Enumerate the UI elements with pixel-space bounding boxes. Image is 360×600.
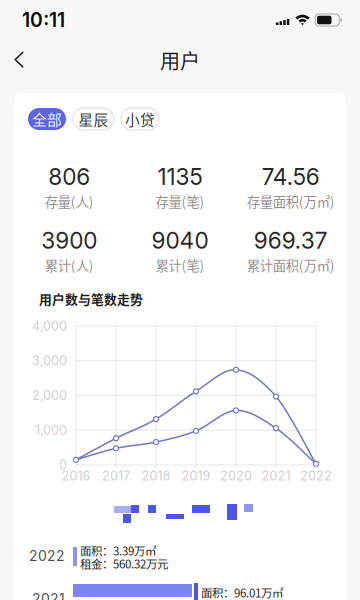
button[interactable]: Back xyxy=(0,40,39,80)
staticText: 全部 xyxy=(32,108,62,130)
staticText: 2022 xyxy=(300,468,332,484)
staticText: 2017 xyxy=(102,468,130,484)
staticText: 9040 xyxy=(151,227,208,254)
staticText: 2022 xyxy=(29,547,65,564)
staticText: 星辰 xyxy=(78,108,108,130)
staticText: 4,000 xyxy=(32,318,67,334)
staticText: 2020 xyxy=(220,468,252,484)
staticText: 2016 xyxy=(61,468,90,484)
staticText: 租金：1508.21万元 xyxy=(201,597,295,600)
button[interactable]: 星辰 xyxy=(73,108,114,130)
staticText: 2,000 xyxy=(32,388,67,403)
staticText: 3900 xyxy=(41,227,97,254)
staticText: 806 xyxy=(48,163,90,190)
staticText: 存量面积(万㎡) xyxy=(247,191,335,211)
staticText: 累计(人) xyxy=(45,255,94,274)
staticText: 2018 xyxy=(141,468,170,484)
staticText: 小贷 xyxy=(125,108,155,130)
staticText: 3,000 xyxy=(32,353,67,368)
staticText: 2021 xyxy=(32,590,65,600)
staticText: 面积：3.39万㎡ xyxy=(80,542,156,559)
staticText: 累计面积(万㎡) xyxy=(247,255,335,274)
staticText: 0 xyxy=(59,457,67,473)
staticText: 1135 xyxy=(157,163,202,190)
staticText: 969.37 xyxy=(254,227,328,254)
staticText: 10:11 xyxy=(22,8,65,32)
staticText: 累计(笔) xyxy=(155,255,204,274)
staticText: 存量(笔) xyxy=(155,191,204,211)
staticText: 2021 xyxy=(261,468,290,484)
staticText: 2019 xyxy=(181,468,210,484)
button[interactable]: 全部 xyxy=(28,108,66,130)
staticText: 租金：560.32万元 xyxy=(80,555,168,572)
staticText: 面积：96.01万㎡ xyxy=(201,584,283,600)
staticText: 用户数与笔数走势 xyxy=(39,289,143,308)
staticText: 存量(人) xyxy=(45,191,94,211)
button[interactable]: 小贷 xyxy=(121,108,159,130)
staticText: 1,000 xyxy=(35,423,67,438)
staticText: 74.56 xyxy=(262,163,320,190)
staticText: 用户 xyxy=(160,45,200,74)
